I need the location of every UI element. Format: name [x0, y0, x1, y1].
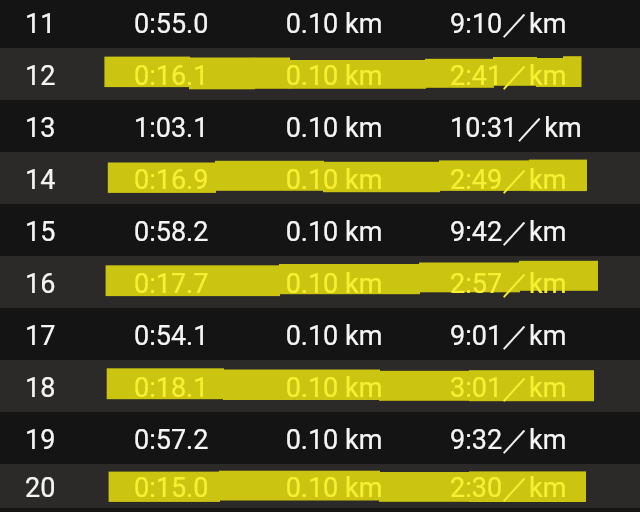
staticText: 0:18.1	[134, 372, 284, 404]
button[interactable]: 16	[0, 256, 640, 308]
staticText: 10:31／km	[450, 111, 630, 145]
staticText: 2:41／km	[450, 59, 630, 93]
staticText: 9:32／km	[450, 423, 630, 457]
staticText: 0.10 km	[258, 112, 410, 144]
staticText: 9:01／km	[450, 319, 630, 353]
staticText: 17	[25, 320, 101, 352]
staticText: 0.10 km	[258, 320, 410, 352]
staticText: 0:58.2	[134, 216, 284, 248]
staticText: 0:55.0	[134, 8, 284, 40]
staticText: 0.10 km	[258, 372, 410, 404]
staticText: 19	[25, 424, 101, 456]
staticText: 0.10 km	[258, 424, 410, 456]
staticText: 3:01／km	[450, 371, 630, 405]
staticText: 13	[25, 112, 101, 144]
button[interactable]: 15	[0, 204, 640, 256]
staticText: 0.10 km	[258, 60, 410, 92]
button[interactable]: 11	[0, 0, 640, 48]
button[interactable]: 20	[0, 464, 640, 508]
button[interactable]: 13	[0, 100, 640, 152]
staticText: 12	[25, 60, 101, 92]
staticText: 0:15.0	[134, 472, 284, 504]
staticText: 16	[25, 268, 101, 300]
staticText: 0:17.7	[134, 268, 284, 300]
staticText: 0.10 km	[258, 164, 410, 196]
button[interactable]: 12	[0, 48, 640, 100]
staticText: 15	[25, 216, 101, 248]
staticText: 0:54.1	[134, 320, 284, 352]
button[interactable]: 14	[0, 152, 640, 204]
staticText: 0:57.2	[134, 424, 284, 456]
staticText: 11	[25, 8, 101, 40]
button[interactable]: 17	[0, 308, 640, 360]
staticText: 0.10 km	[258, 8, 410, 40]
staticText: 0:16.9	[134, 164, 284, 196]
staticText: 0.10 km	[258, 268, 410, 300]
staticText: 0.10 km	[258, 216, 410, 248]
staticText: 2:30／km	[450, 471, 630, 505]
staticText: 1:03.1	[134, 112, 284, 144]
staticText: 18	[25, 372, 101, 404]
staticText: 9:42／km	[450, 215, 630, 249]
staticText: 2:57／km	[450, 267, 630, 301]
staticText: 0.10 km	[258, 472, 410, 504]
staticText: 14	[25, 164, 101, 196]
button[interactable]: 18	[0, 360, 640, 412]
button[interactable]: 19	[0, 412, 640, 464]
staticText: 9:10／km	[450, 7, 630, 41]
staticText: 20	[25, 472, 101, 504]
staticText: 2:49／km	[450, 163, 630, 197]
staticText: 0:16.1	[134, 60, 284, 92]
